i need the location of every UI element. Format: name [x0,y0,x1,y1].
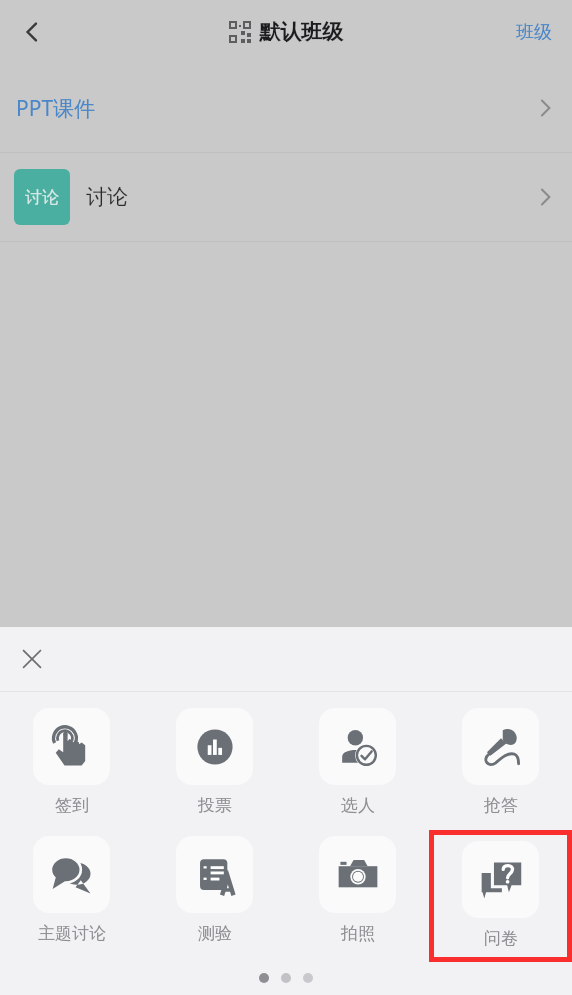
staticText: 班级 [516,21,552,44]
staticText: 测验 [198,923,232,944]
staticText: 讨论 [25,187,59,208]
button[interactable]: 主题讨论 [0,830,143,952]
button[interactable]: 签到 [0,702,143,824]
staticText: 主题讨论 [38,923,106,944]
button[interactable]: 投票 [143,702,286,824]
button[interactable]: 问卷 [434,835,567,957]
button[interactable]: 抢答 [429,702,572,824]
button[interactable]: 测验 [143,830,286,952]
button[interactable]: Back [0,0,64,64]
button[interactable]: 拍照 [286,830,429,952]
staticText: 投票 [198,795,232,816]
button[interactable]: 选人 [286,702,429,824]
staticText: 选人 [341,795,375,816]
button[interactable]: Close [10,637,54,681]
button[interactable]: 讨论 [0,153,572,241]
staticText: 问卷 [484,928,518,949]
button[interactable]: 班级 [510,13,558,52]
staticText: 签到 [55,795,89,816]
staticText: 讨论 [86,184,128,210]
staticText: 拍照 [341,923,375,944]
staticText: 抢答 [484,795,518,816]
staticText: 默认班级 [259,19,343,45]
button[interactable]: PPT课件 [0,64,572,152]
staticText: PPT课件 [16,94,96,123]
